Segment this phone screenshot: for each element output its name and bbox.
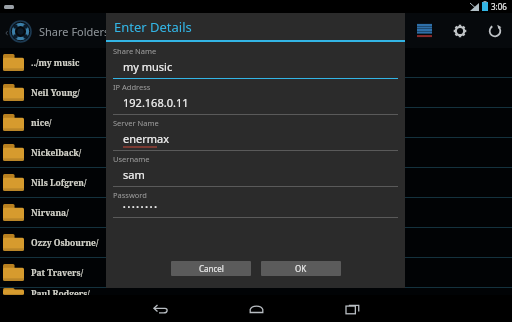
staticText: my music — [123, 59, 173, 74]
staticText: Neil Young/ — [31, 87, 80, 99]
staticText: Share Folders fo — [39, 24, 123, 39]
button[interactable]: Neil Young/ — [0, 78, 512, 107]
button[interactable]: Ozzy Osbourne/ — [0, 228, 512, 257]
staticText: Pat Travers/ — [31, 267, 84, 279]
staticText: ../my music — [31, 57, 80, 69]
staticText: IP Address — [113, 82, 151, 92]
staticText: Username — [113, 154, 150, 164]
staticText: nice/ — [31, 117, 52, 129]
button[interactable]: Settings — [442, 13, 477, 48]
staticText: Nickelback/ — [31, 147, 82, 159]
button[interactable]: Cancel — [171, 261, 251, 276]
button[interactable]: Refresh — [477, 13, 512, 48]
staticText: Server Name — [113, 118, 159, 128]
button[interactable]: nice/ — [0, 108, 512, 137]
staticText: 3:06 — [491, 1, 507, 12]
staticText: OK — [295, 263, 307, 274]
button[interactable]: Home — [228, 295, 284, 322]
staticText: Password — [113, 190, 147, 200]
staticText: enermax — [123, 131, 170, 146]
staticText: • • • • • • • • — [123, 203, 157, 213]
staticText: Nils Lofgren/ — [31, 177, 87, 189]
staticText: Cancel — [199, 263, 224, 274]
button[interactable]: ../my music — [0, 48, 512, 77]
button[interactable]: Up, app icon — [2, 15, 34, 47]
button[interactable]: Nickelback/ — [0, 138, 512, 167]
staticText: Enter Details — [114, 18, 192, 36]
button[interactable]: OK — [261, 261, 341, 276]
button[interactable]: Recents — [324, 295, 380, 322]
button[interactable]: Nirvana/ — [0, 198, 512, 227]
staticText: Ozzy Osbourne/ — [31, 237, 99, 249]
staticText: 192.168.0.11 — [123, 95, 189, 110]
button[interactable]: Paul Rodgers/ — [0, 288, 512, 295]
button[interactable]: Nils Lofgren/ — [0, 168, 512, 197]
button[interactable]: List view — [407, 13, 442, 48]
staticText: ‹ — [5, 24, 9, 39]
staticText: Paul Rodgers/ — [31, 288, 90, 295]
staticText: sam — [123, 167, 145, 182]
button[interactable]: Back — [132, 295, 188, 322]
staticText: Share Name — [113, 46, 157, 56]
button[interactable]: Pat Travers/ — [0, 258, 512, 287]
staticText: Nirvana/ — [31, 207, 69, 219]
